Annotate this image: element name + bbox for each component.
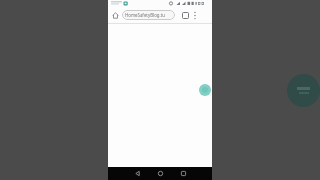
- button[interactable]: [127, 167, 147, 180]
- button[interactable]: [108, 7, 122, 23]
- staticText: HomeSafetyBlog.tu: [125, 12, 165, 18]
- button[interactable]: [199, 84, 211, 96]
- button[interactable]: [173, 167, 193, 180]
- button[interactable]: [287, 74, 320, 107]
- button[interactable]: [193, 11, 197, 20]
- button[interactable]: [182, 12, 189, 19]
- button[interactable]: HomeSafetyBlog.tu: [122, 10, 175, 20]
- button[interactable]: [150, 167, 170, 180]
